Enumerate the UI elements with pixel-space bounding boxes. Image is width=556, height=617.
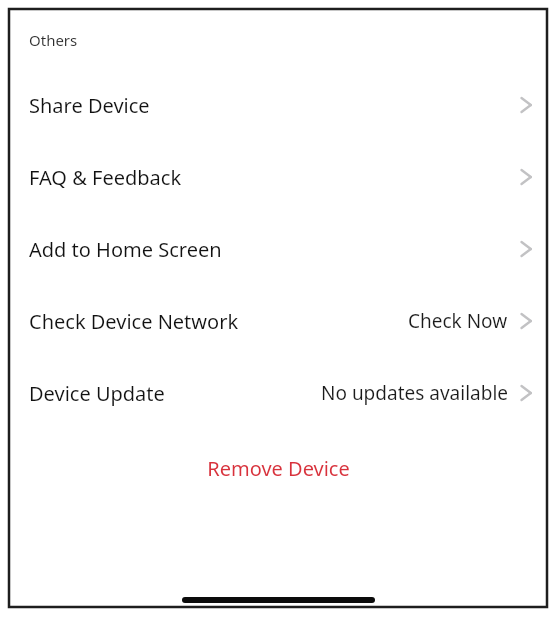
button[interactable]: Share Device (11, 69, 545, 141)
other: Open (518, 381, 534, 405)
staticText: Share Device (29, 92, 150, 119)
staticText: Others (29, 30, 78, 50)
other: Open (518, 93, 534, 117)
staticText: No updates available (321, 380, 508, 406)
staticText: Add to Home Screen (29, 236, 222, 263)
other: Open (518, 165, 534, 189)
other: Open (518, 309, 534, 333)
other: Open (518, 237, 534, 261)
staticText: Check Now (408, 308, 508, 334)
staticText: Device Update (29, 380, 165, 407)
button[interactable]: Device Update (11, 357, 545, 429)
staticText: Remove Device (207, 455, 350, 482)
button[interactable]: Remove Device (11, 429, 545, 507)
staticText: Check Device Network (29, 308, 239, 335)
button[interactable]: FAQ & Feedback (11, 141, 545, 213)
button[interactable]: Add to Home Screen (11, 213, 545, 285)
staticText: FAQ & Feedback (29, 164, 182, 191)
button[interactable]: Check Device Network (11, 285, 545, 357)
